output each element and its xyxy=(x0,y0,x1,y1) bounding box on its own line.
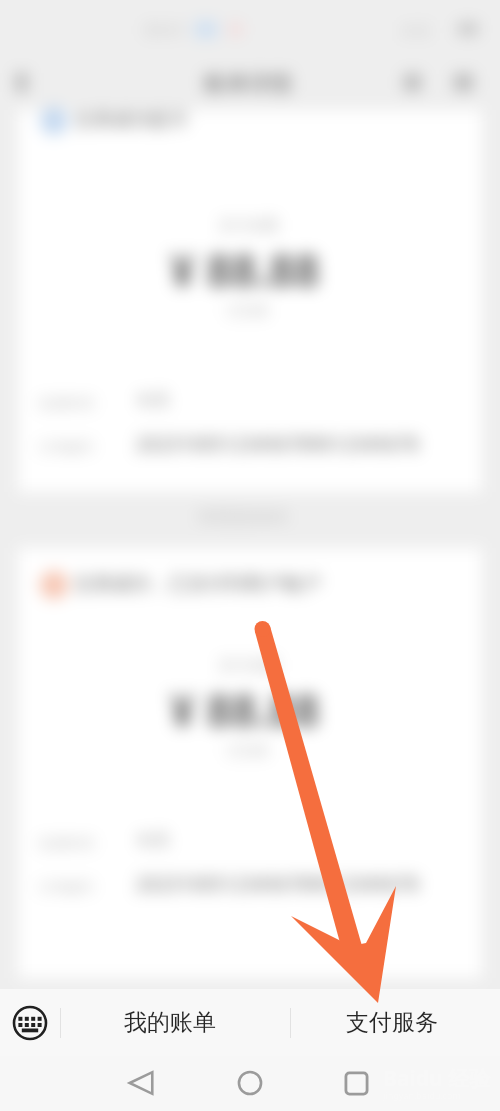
staticText: ¥ 88.88 xyxy=(170,240,320,300)
staticText: 我的账单 xyxy=(124,1008,216,1037)
staticText: 支付金额 xyxy=(218,656,278,675)
button[interactable]: Recents xyxy=(335,1062,377,1104)
button[interactable]: 支付服务 xyxy=(287,989,496,1056)
button[interactable]: Keyboard xyxy=(6,999,54,1047)
button[interactable]: 我的账单 xyxy=(55,989,284,1056)
button[interactable]: Home xyxy=(229,1062,271,1104)
staticText: 20231005123456789012345678 xyxy=(136,871,419,897)
staticText: 交易成功，已支付到商户账户 xyxy=(74,572,321,596)
staticText: ¥ 88.88 xyxy=(170,680,320,740)
staticText: 账单详情 xyxy=(204,70,292,98)
staticText: 今天 xyxy=(136,830,170,851)
staticText: 交易成功提示 xyxy=(74,108,188,132)
staticText: 20231005123456789012345678 xyxy=(136,431,419,457)
staticText: 支付服务 xyxy=(346,1008,438,1037)
button[interactable]: Back xyxy=(120,1062,162,1104)
staticText: 今天 xyxy=(136,390,170,411)
